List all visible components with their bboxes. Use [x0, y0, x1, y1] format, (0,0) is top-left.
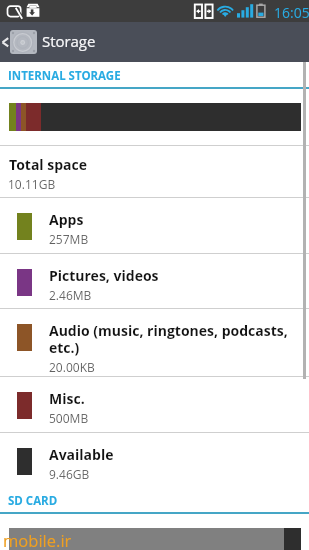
staticText: 257MB — [49, 231, 89, 247]
staticText: 500MB — [49, 410, 89, 426]
staticText: Audio (music, ringtones, podcasts, etc.) — [49, 321, 288, 357]
button[interactable] — [0, 22, 309, 62]
staticText: Total space — [9, 155, 87, 174]
button[interactable]: Misc. — [0, 377, 309, 433]
staticText: 10.11GB — [8, 176, 56, 192]
staticText: 20.00KB — [49, 359, 95, 375]
staticText: Pictures, videos — [49, 266, 159, 285]
staticText: mobile.ir — [3, 529, 72, 550]
staticText: INTERNAL STORAGE — [8, 68, 121, 84]
staticText: Available — [49, 445, 114, 464]
button[interactable]: Apps — [0, 198, 309, 254]
button[interactable]: Total space — [0, 146, 309, 198]
button[interactable]: Pictures, videos — [0, 254, 309, 309]
staticText: 16:05 — [274, 3, 309, 22]
staticText: Apps — [49, 210, 84, 229]
staticText: 2.46MB — [49, 287, 92, 303]
staticText: Storage — [42, 31, 96, 51]
staticText: SD CARD — [8, 493, 58, 509]
staticText: 9.46GB — [49, 466, 90, 482]
button[interactable]: Available — [0, 433, 309, 489]
staticText: Misc. — [49, 389, 85, 408]
button[interactable]: Audio (music, ringtones, podcasts, etc.) — [0, 309, 309, 377]
other: Navigate up — [1, 36, 11, 49]
